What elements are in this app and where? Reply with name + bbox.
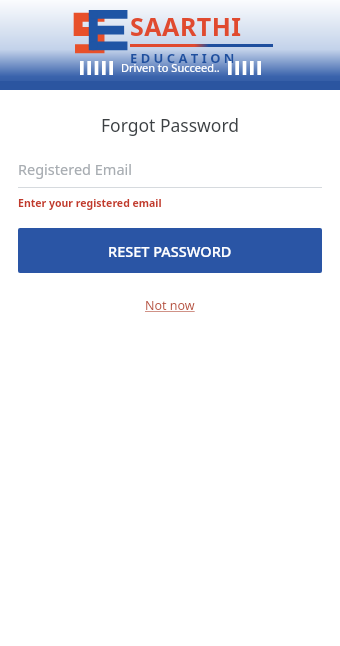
staticText: E D U C A T I O N — [130, 49, 235, 67]
button[interactable]: RESET PASSWORD — [18, 228, 322, 273]
button[interactable]: Registered Email — [18, 159, 322, 188]
staticText: Forgot Password — [101, 113, 240, 137]
staticText: Registered Email — [18, 159, 133, 179]
staticText: Driven to Succeed.. — [121, 60, 220, 75]
staticText: RESET PASSWORD — [108, 241, 232, 261]
staticText: Enter your registered email — [18, 196, 162, 210]
staticText: Not now — [145, 297, 195, 314]
staticText: SAARTHI — [130, 9, 242, 43]
button[interactable]: Not now — [137, 293, 203, 318]
